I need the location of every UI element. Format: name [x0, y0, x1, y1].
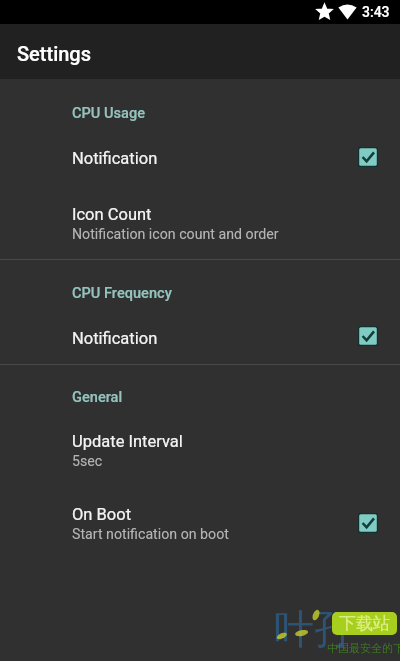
button[interactable]: Update Interval: [0, 413, 400, 469]
other: Wifi signal: [338, 3, 357, 20]
staticText: General: [72, 388, 123, 405]
staticText: CPU Usage: [72, 104, 146, 121]
other: Starred: [317, 4, 332, 19]
staticText: 叶孖: [274, 604, 354, 654]
staticText: 下载站: [339, 613, 390, 634]
button[interactable]: Icon Count: [0, 186, 400, 242]
staticText: Settings: [17, 42, 92, 65]
staticText: CPU Frequency: [72, 284, 172, 301]
button[interactable]: Notification: [0, 130, 400, 176]
staticText: 中国最安全的下载站: [327, 641, 400, 655]
staticText: Notification: [72, 329, 158, 348]
button[interactable]: Settings: [0, 24, 400, 79]
staticText: Notification: [72, 149, 158, 168]
staticText: Icon Count: [72, 205, 152, 224]
staticText: On Boot: [72, 505, 132, 524]
button[interactable]: On Boot: [0, 486, 400, 542]
staticText: Start notification on boot: [72, 526, 229, 543]
staticText: Update Interval: [72, 432, 183, 451]
staticText: Notification icon count and order: [72, 226, 279, 243]
button[interactable]: 下载站: [332, 612, 397, 635]
staticText: 3:43: [362, 4, 390, 20]
button[interactable]: Notification: [0, 310, 400, 356]
staticText: 5sec: [72, 453, 103, 470]
